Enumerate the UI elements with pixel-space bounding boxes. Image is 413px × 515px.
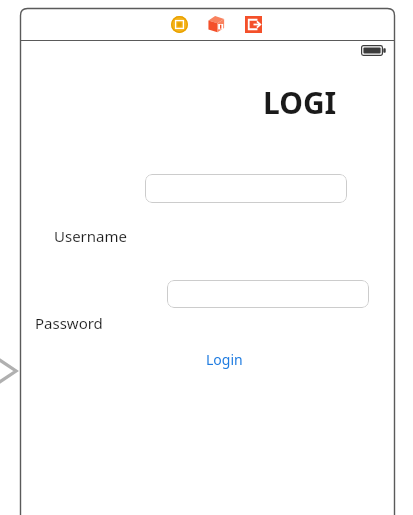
button[interactable]: Login xyxy=(206,350,246,370)
button[interactable]: Log out xyxy=(245,16,262,33)
staticText: Password xyxy=(35,313,103,333)
button[interactable]: Package xyxy=(207,15,225,33)
other: Battery xyxy=(361,45,386,56)
button[interactable]: Next xyxy=(0,355,18,387)
staticText: Username xyxy=(54,226,127,246)
staticText: Login xyxy=(206,350,243,369)
staticText: LOGIN xyxy=(263,82,355,116)
button[interactable]: Record xyxy=(171,16,188,33)
button[interactable] xyxy=(145,174,347,203)
button[interactable] xyxy=(167,280,369,308)
